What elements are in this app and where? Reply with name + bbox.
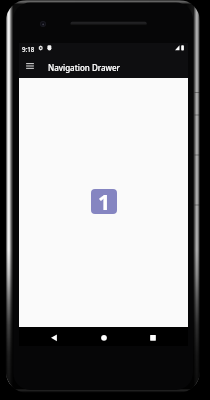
button[interactable]: 1: [91, 189, 117, 214]
button[interactable]: Home: [93, 327, 115, 346]
button[interactable]: Recent apps: [142, 327, 164, 346]
button[interactable]: Open navigation drawer: [19, 56, 41, 78]
staticText: Navigation Drawer: [48, 62, 120, 73]
button[interactable]: Back: [43, 327, 65, 346]
staticText: 9:18: [22, 45, 35, 53]
staticText: 1: [98, 189, 111, 212]
